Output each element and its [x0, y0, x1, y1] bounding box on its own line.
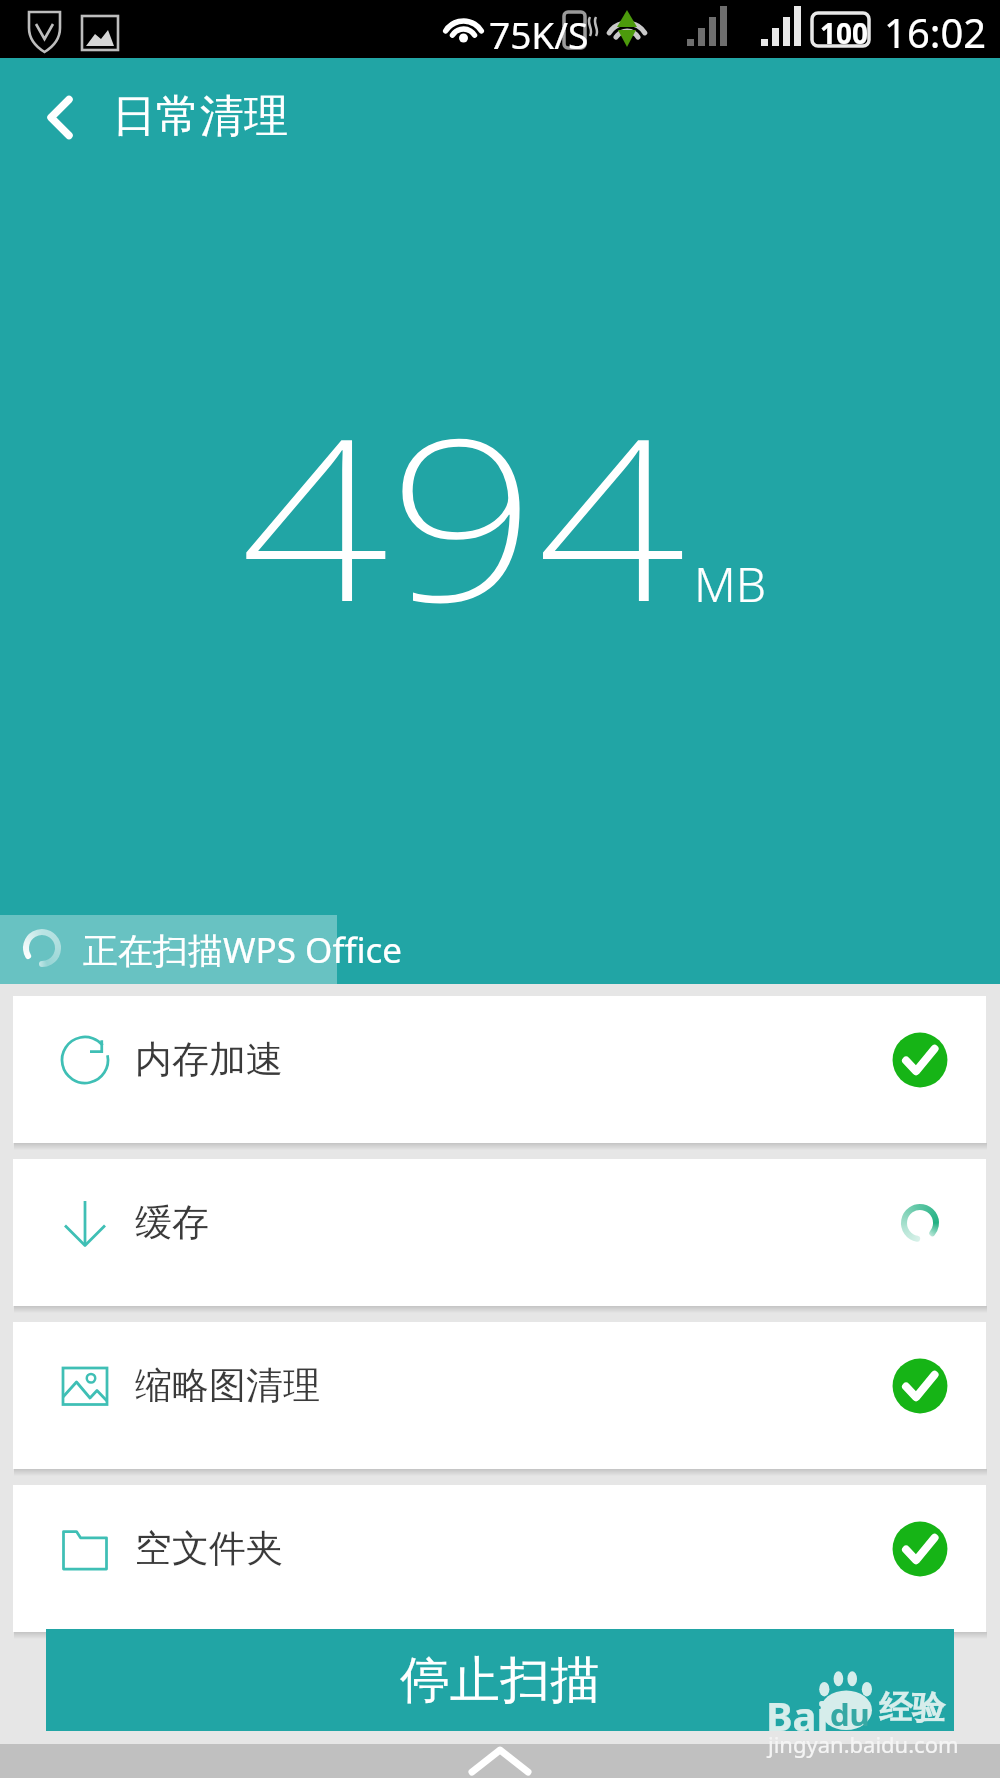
staticText: 空文件夹 [135, 1525, 283, 1572]
button[interactable]: 缩略图清理 [13, 1322, 986, 1469]
staticText: 16:02 [884, 5, 987, 59]
staticText: jingyan.baidu.com [768, 1729, 959, 1759]
staticText: 经验 [879, 1687, 945, 1729]
staticText: 494 [240, 362, 686, 667]
staticText: 100 [820, 14, 869, 52]
button[interactable]: Show navigation bar [430, 1744, 570, 1778]
staticText: du [830, 1693, 870, 1735]
staticText: 日常清理 [112, 89, 288, 144]
staticText: 停止扫描 [400, 1649, 600, 1712]
staticText: 缓存 [135, 1199, 209, 1246]
staticText: 缩略图清理 [135, 1362, 320, 1409]
button[interactable]: 空文件夹 [13, 1485, 986, 1632]
staticText: MB [694, 551, 767, 616]
staticText: 正在扫描WPS Office [83, 926, 403, 974]
button[interactable]: 缓存 [13, 1159, 986, 1306]
staticText: 75K/S [489, 9, 589, 59]
staticText: 内存加速 [135, 1036, 283, 1083]
staticText: Bai [766, 1688, 829, 1742]
button[interactable]: 停止扫描 [46, 1629, 954, 1731]
button[interactable]: Back [14, 58, 114, 175]
button[interactable]: 内存加速 [13, 996, 986, 1143]
